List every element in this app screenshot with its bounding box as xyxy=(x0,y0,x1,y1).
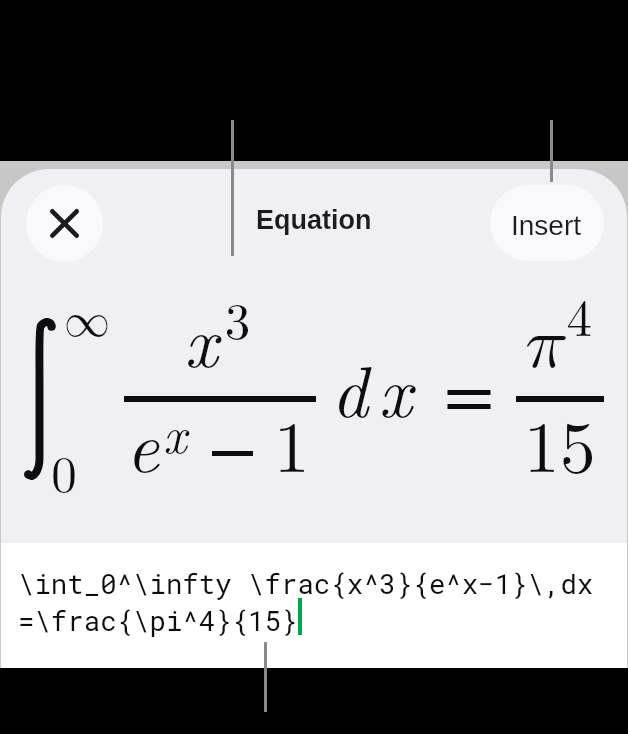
staticText: Equation xyxy=(256,205,372,235)
staticText: =\frac{\pi^4}{15} xyxy=(18,602,298,638)
button[interactable]: Close xyxy=(26,185,103,262)
button[interactable]: Insert xyxy=(490,185,604,261)
staticText: Insert xyxy=(511,210,582,241)
staticText: \int_0^\infty \frac{x^3}{e^x−1}\,dx xyxy=(18,565,594,601)
